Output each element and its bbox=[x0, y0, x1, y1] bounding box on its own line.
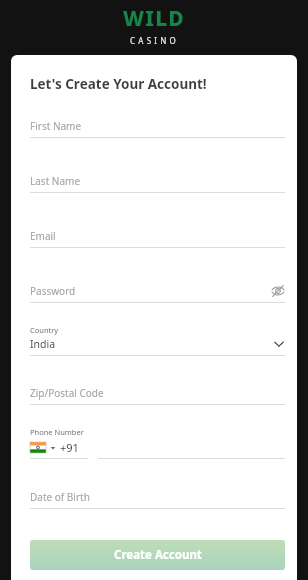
staticText: Last Name bbox=[30, 174, 81, 188]
button[interactable]: Email bbox=[30, 193, 285, 248]
staticText: Date of Birth bbox=[30, 490, 90, 504]
staticText: Password bbox=[30, 284, 76, 298]
staticText: Country bbox=[30, 325, 59, 335]
staticText: India bbox=[30, 337, 56, 351]
staticText: WILD bbox=[123, 4, 185, 33]
button[interactable]: Create Account bbox=[30, 540, 285, 570]
button[interactable]: Country bbox=[30, 303, 285, 356]
other: Show password bbox=[271, 284, 285, 298]
button[interactable]: Password bbox=[30, 248, 285, 303]
button[interactable]: Zip/Postal Code bbox=[30, 356, 285, 405]
button[interactable]: Phone Number bbox=[30, 405, 285, 459]
button[interactable]: Date of Birth bbox=[30, 459, 285, 509]
staticText: Phone Number bbox=[30, 427, 84, 437]
staticText: +91 bbox=[60, 440, 79, 455]
button[interactable]: First Name bbox=[30, 105, 285, 138]
staticText: Create Account bbox=[114, 547, 202, 563]
staticText: Let's Create Your Account! bbox=[30, 75, 207, 93]
staticText: Email bbox=[30, 229, 56, 243]
staticText: CASINO bbox=[130, 35, 179, 46]
staticText: Zip/Postal Code bbox=[30, 386, 104, 400]
staticText: First Name bbox=[30, 119, 82, 133]
button[interactable]: Last Name bbox=[30, 138, 285, 193]
